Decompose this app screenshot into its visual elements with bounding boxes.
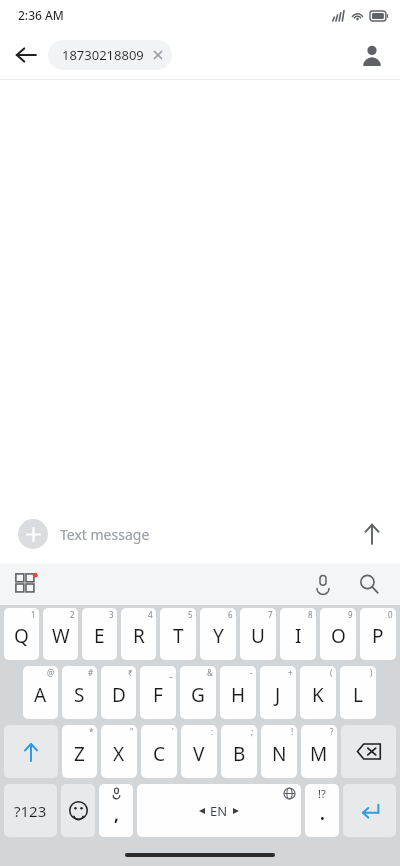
button[interactable]: Add attachment <box>18 519 48 549</box>
button[interactable]: : <box>181 725 217 778</box>
button[interactable]: Comma, voice input <box>99 784 133 837</box>
button[interactable]: Back <box>6 35 46 75</box>
button[interactable]: 3 <box>82 608 117 660</box>
staticText: C <box>153 741 166 767</box>
staticText: & <box>207 667 213 678</box>
button[interactable]: ? <box>301 725 337 778</box>
staticText: ?123 <box>14 801 47 821</box>
button[interactable]: 1 <box>4 608 39 660</box>
button[interactable]: * <box>62 725 97 778</box>
staticText: E <box>94 623 105 649</box>
button[interactable]: ( <box>300 666 336 719</box>
staticText: A <box>34 682 47 708</box>
staticText: " <box>130 726 134 737</box>
staticText: ! <box>291 726 294 737</box>
staticText: 18730218809 <box>62 46 144 64</box>
button[interactable]: ; <box>221 725 257 778</box>
button[interactable]: - <box>220 666 256 719</box>
staticText: M <box>310 741 328 767</box>
button[interactable]: @ <box>23 666 58 719</box>
staticText: G <box>191 682 205 708</box>
staticText: ) <box>370 667 373 678</box>
button[interactable]: 2 <box>43 608 78 660</box>
button[interactable]: Shift <box>4 725 58 778</box>
staticText: 3 <box>109 609 114 620</box>
staticText: Q <box>14 623 29 649</box>
staticText: I <box>295 623 302 649</box>
staticText: : <box>211 726 214 737</box>
button[interactable]: _ <box>140 666 176 719</box>
staticText: K <box>312 682 324 708</box>
button[interactable]: & <box>180 666 216 719</box>
button[interactable]: 18730218809 <box>48 40 172 70</box>
button[interactable]: + <box>260 666 296 719</box>
staticText: ₹ <box>128 667 133 678</box>
staticText: 2:36 AM <box>18 7 64 23</box>
staticText: @ <box>47 667 55 678</box>
button[interactable]: 6 <box>200 608 236 660</box>
staticText: N <box>272 741 287 767</box>
staticText: J <box>275 682 281 708</box>
staticText: - <box>250 667 253 678</box>
staticText: P <box>372 623 384 649</box>
staticText: 4 <box>148 609 153 620</box>
button[interactable]: 7 <box>240 608 276 660</box>
staticText: S <box>74 682 85 708</box>
button[interactable]: Enter <box>343 784 396 837</box>
button[interactable]: 5 <box>160 608 196 660</box>
staticText: Y <box>213 623 224 649</box>
button[interactable]: ?123 <box>4 784 57 837</box>
staticText: , <box>114 803 119 826</box>
staticText: H <box>231 682 246 708</box>
staticText: _ <box>169 667 173 678</box>
button[interactable]: Toolbar menu <box>8 566 44 602</box>
staticText: R <box>133 623 145 649</box>
staticText: Z <box>74 741 85 767</box>
staticText: D <box>112 682 126 708</box>
button[interactable]: Send <box>350 512 394 556</box>
staticText: EN <box>210 802 228 820</box>
staticText: Text message <box>60 525 150 544</box>
button[interactable]: Space <box>137 784 301 837</box>
button[interactable]: Search <box>352 567 386 601</box>
staticText: 5 <box>188 609 193 620</box>
staticText: 2 <box>70 609 75 620</box>
button[interactable]: 8 <box>280 608 316 660</box>
button[interactable]: ₹ <box>101 666 136 719</box>
staticText: T <box>173 623 184 649</box>
button[interactable]: Voice input <box>306 567 340 601</box>
button[interactable]: ) <box>340 666 376 719</box>
button[interactable]: 4 <box>121 608 156 660</box>
staticText: 9 <box>348 609 353 620</box>
button[interactable]: " <box>101 725 137 778</box>
button[interactable]: Add attachment <box>12 513 344 555</box>
staticText: ; <box>251 726 254 737</box>
staticText: 8 <box>308 609 313 620</box>
button[interactable]: Period <box>305 784 339 837</box>
staticText: + <box>288 667 293 678</box>
staticText: W <box>52 623 70 649</box>
staticText: * <box>89 726 94 737</box>
staticText: !? <box>318 786 326 801</box>
staticText: 6 <box>228 609 233 620</box>
button[interactable]: 9 <box>320 608 356 660</box>
staticText: 7 <box>268 609 273 620</box>
button[interactable]: Emoji <box>61 784 95 837</box>
staticText: O <box>331 623 346 649</box>
button[interactable]: ' <box>141 725 177 778</box>
staticText: . <box>320 802 325 825</box>
button[interactable]: ! <box>261 725 297 778</box>
button[interactable]: 0 <box>360 608 396 660</box>
button[interactable]: # <box>62 666 97 719</box>
staticText: ( <box>330 667 333 678</box>
button[interactable]: Contact details <box>352 35 392 75</box>
staticText: X <box>113 741 125 767</box>
staticText: F <box>153 682 163 708</box>
staticText: 1 <box>31 609 36 620</box>
button[interactable]: Backspace <box>341 725 396 778</box>
staticText: L <box>353 682 363 708</box>
staticText: # <box>88 667 94 678</box>
staticText: 0 <box>388 609 393 620</box>
staticText: ' <box>172 726 174 737</box>
staticText: U <box>251 623 265 649</box>
